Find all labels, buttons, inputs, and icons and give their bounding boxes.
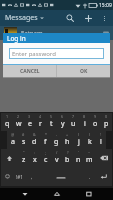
staticText: ☺ (5, 174, 10, 179)
button[interactable]: ! (95, 131, 106, 149)
staticText: 0 (105, 114, 108, 119)
staticText: v (55, 155, 59, 165)
button[interactable]: Enter (95, 167, 112, 186)
button[interactable]: 1 (1, 113, 13, 131)
staticText: s (22, 137, 26, 147)
staticText: 8 (83, 114, 86, 119)
button[interactable]: Symbols (13, 167, 26, 186)
staticText: 6 (61, 114, 64, 119)
staticText: d (32, 137, 37, 147)
button[interactable]: 8 (79, 113, 90, 131)
button[interactable]: New message (79, 10, 97, 26)
staticText: 7 (72, 114, 75, 119)
staticText: 9 (94, 114, 97, 119)
staticText: - (56, 132, 58, 137)
button[interactable]: 7 (68, 113, 79, 131)
staticText: # (22, 132, 25, 137)
button[interactable]: ( (73, 131, 84, 149)
staticText: k (88, 137, 92, 147)
staticText: o (93, 119, 98, 129)
staticText: c (44, 155, 48, 165)
staticText: l (100, 137, 102, 147)
button[interactable]: Recents (81, 188, 97, 200)
button[interactable]: ? (62, 149, 73, 167)
button[interactable]: Search (61, 10, 79, 26)
staticText: . (89, 174, 91, 180)
staticText: i (84, 119, 86, 129)
staticText: 4 (39, 114, 42, 119)
staticText: @ (11, 132, 15, 137)
staticText: " (23, 150, 25, 155)
staticText: + (66, 132, 69, 137)
staticText: r (39, 119, 42, 129)
button[interactable]: ~ (84, 149, 95, 167)
staticText: f (44, 137, 47, 147)
staticText: ( (78, 132, 80, 137)
button[interactable]: More options (97, 11, 112, 26)
staticText: a (11, 137, 15, 147)
button[interactable]: OK (57, 65, 110, 77)
staticText: Log in (7, 34, 26, 43)
staticText: & (33, 132, 36, 137)
button[interactable]: Enter password (9, 48, 104, 59)
button[interactable]: ' (73, 149, 84, 167)
staticText: w (16, 119, 22, 129)
staticText: n (76, 155, 81, 165)
button[interactable]: & (29, 131, 40, 149)
staticText: p (104, 119, 109, 129)
button[interactable]: 3 (24, 113, 35, 131)
staticText: 5 (50, 114, 53, 119)
staticText: , (31, 174, 33, 180)
staticText: ) (89, 132, 91, 137)
staticText: CANCEL (20, 68, 40, 75)
button[interactable]: ) (84, 131, 95, 149)
staticText: u (71, 119, 76, 129)
button[interactable]: Messages (0, 13, 48, 23)
button[interactable]: 2 (13, 113, 24, 131)
button[interactable]: CANCEL (3, 65, 56, 77)
staticText: 15:09 (99, 2, 112, 9)
button[interactable]: : (29, 149, 40, 167)
staticText: Eatnam (21, 29, 43, 37)
button[interactable]: Comma (26, 167, 37, 186)
staticText: Messages (5, 13, 38, 23)
button[interactable]: 9 (90, 113, 101, 131)
button[interactable]: Backspace (95, 149, 112, 167)
staticText: m (86, 155, 93, 165)
staticText: h (65, 137, 70, 147)
button[interactable]: 4 (35, 113, 46, 131)
button[interactable]: # (18, 131, 29, 149)
staticText: ; (45, 150, 46, 155)
staticText: !#1 (16, 174, 23, 180)
staticText: j (78, 137, 80, 147)
button[interactable]: * (40, 131, 51, 149)
staticText: b (65, 155, 70, 165)
button[interactable]: - (51, 131, 62, 149)
button[interactable]: " (18, 149, 29, 167)
staticText: t (50, 119, 53, 129)
button[interactable]: / (51, 149, 62, 167)
staticText: ? (67, 150, 69, 155)
staticText: Enter password (12, 50, 56, 58)
button[interactable]: 6 (57, 113, 68, 131)
staticText: ' (78, 150, 79, 155)
button[interactable]: Back (17, 188, 33, 200)
button[interactable]: + (62, 131, 73, 149)
staticText: q (5, 119, 10, 129)
staticText: z (22, 155, 26, 165)
button[interactable]: ; (40, 149, 51, 167)
button[interactable]: Home (49, 188, 65, 200)
button[interactable]: Emoji (1, 167, 13, 186)
staticText: e (28, 119, 32, 129)
button[interactable]: Eatnam (0, 26, 113, 40)
staticText: y (61, 119, 65, 129)
button[interactable]: @ (7, 131, 18, 149)
button[interactable]: Space (37, 167, 84, 186)
staticText: OK (80, 68, 88, 75)
staticText: * (45, 132, 47, 137)
button[interactable]: 0 (101, 113, 112, 131)
button[interactable]: 5 (46, 113, 57, 131)
button[interactable]: Period (84, 167, 95, 186)
button[interactable]: Shift (1, 149, 18, 167)
staticText: : (34, 150, 35, 155)
